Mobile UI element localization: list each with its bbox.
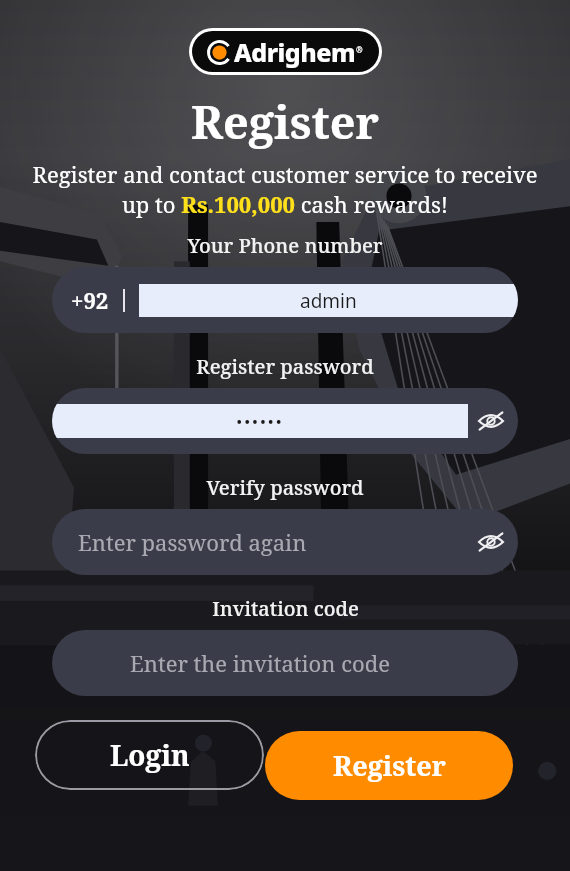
button[interactable]: Enter the invitation code xyxy=(52,630,518,696)
staticText: •••••• xyxy=(236,410,284,433)
button[interactable]: •••••• xyxy=(52,388,518,454)
button[interactable]: Show register password xyxy=(468,398,514,444)
staticText: +92 xyxy=(71,285,109,315)
staticText: Enter password again xyxy=(78,527,468,557)
button[interactable]: Enter password again xyxy=(52,509,518,575)
staticText: Register password xyxy=(196,353,374,380)
staticText: Register xyxy=(191,91,379,152)
staticText: admin xyxy=(300,288,357,314)
button[interactable]: Login xyxy=(35,720,264,790)
button[interactable]: +92 xyxy=(52,267,518,333)
staticText: Enter the invitation code xyxy=(130,648,391,678)
staticText: Login xyxy=(110,736,190,774)
button[interactable]: Adrighem logo xyxy=(192,31,379,72)
button[interactable]: Show verify password xyxy=(468,519,514,565)
staticText: ® xyxy=(356,44,363,55)
staticText: Adrighem xyxy=(234,35,356,69)
staticText: Invitation code xyxy=(212,595,359,622)
button[interactable]: Register xyxy=(265,731,513,800)
staticText: Verify password xyxy=(206,474,364,501)
staticText: Register and contact customer service to… xyxy=(26,159,544,220)
staticText: Register xyxy=(333,747,446,784)
staticText: Your Phone number xyxy=(187,232,383,259)
